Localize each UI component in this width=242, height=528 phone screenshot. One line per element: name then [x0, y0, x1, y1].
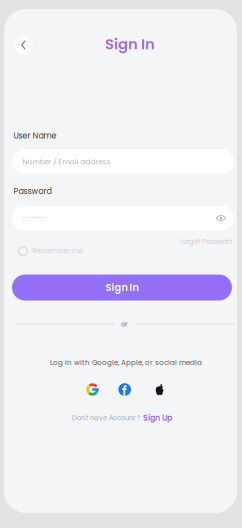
button[interactable]: Sign in with Facebook: [118, 383, 131, 396]
staticText: Sign In: [105, 281, 138, 294]
staticText: Sign In: [105, 34, 155, 54]
staticText: Password: [13, 185, 51, 197]
staticText: Remember me: [32, 246, 82, 256]
button[interactable]: Don't have Account ?: [62, 413, 182, 423]
staticText: Don't have Account ?: [72, 413, 140, 423]
button[interactable]: Back: [12, 34, 34, 56]
staticText: or: [121, 319, 128, 329]
staticText: User Name: [13, 130, 56, 141]
staticText: Log in with Google, Apple, or social med…: [50, 358, 202, 367]
button[interactable]: Sign in with Google: [86, 383, 99, 396]
button[interactable]: Forgot Password: [179, 237, 233, 246]
staticText: ••••••••: [22, 213, 46, 223]
staticText: Forgot Password: [180, 237, 233, 246]
button[interactable]: Sign in with Apple: [155, 384, 165, 395]
staticText: Sign Up: [143, 412, 172, 423]
button[interactable]: Remember me: [19, 245, 82, 256]
staticText: Number / Email address: [22, 157, 110, 167]
button[interactable]: Sign In: [12, 274, 232, 300]
